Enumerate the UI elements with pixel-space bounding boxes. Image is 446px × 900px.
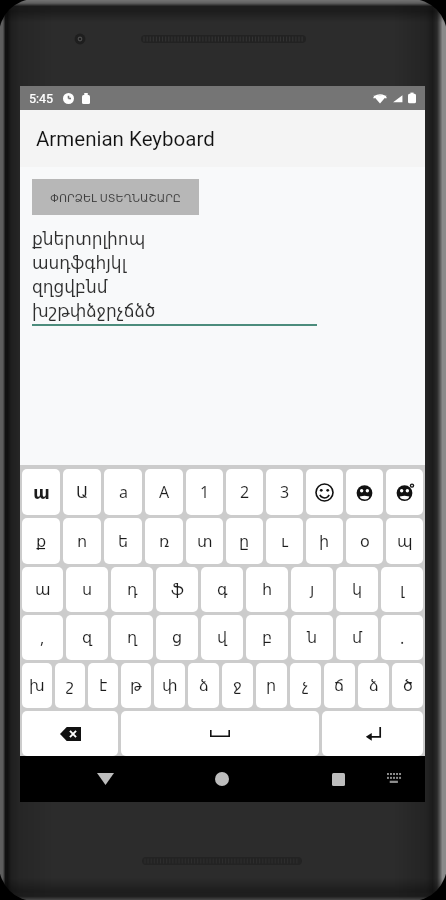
button[interactable]: Space (121, 711, 319, 756)
button[interactable]: ռ (145, 518, 183, 564)
button[interactable]: ը (226, 518, 263, 564)
staticText: քներտրլիոպ (32, 229, 146, 249)
button[interactable]: պ (386, 518, 423, 564)
button[interactable]: , (22, 615, 63, 660)
button[interactable]: ճ (324, 663, 355, 708)
button[interactable]: է (88, 663, 118, 708)
button[interactable]: յ (291, 567, 333, 612)
button[interactable]: ֆ (156, 567, 198, 612)
button[interactable]: ՓՈՐՁԵԼ ՍՏԵՂՆԱՇԱՐԸ (32, 179, 199, 215)
button[interactable]: . (381, 615, 423, 660)
staticText: ե (118, 532, 129, 551)
button[interactable]: մ (336, 615, 378, 660)
button[interactable]: փ (154, 663, 185, 708)
staticText: կ (352, 580, 363, 599)
button[interactable]: հ (246, 567, 288, 612)
staticText: ռ (159, 532, 170, 551)
staticText: գ (217, 580, 228, 599)
button[interactable]: օ (346, 518, 383, 564)
button[interactable]: a (104, 469, 142, 515)
staticText: ի (319, 532, 330, 551)
button[interactable]: տ (186, 518, 223, 564)
staticText: հ (262, 580, 273, 599)
button[interactable]: ն (291, 615, 333, 660)
staticText: ք (36, 532, 47, 551)
button[interactable]: ծ (392, 663, 423, 708)
button[interactable]: զ (66, 615, 108, 660)
staticText: մ (352, 628, 363, 647)
button[interactable]: ի (306, 518, 343, 564)
button[interactable]: ջ (222, 663, 253, 708)
button[interactable]: Enter (322, 711, 423, 756)
staticText: ա (33, 482, 50, 503)
button[interactable]: Emoji filled (346, 469, 383, 515)
staticText: է (99, 676, 108, 695)
button[interactable]: Back (83, 756, 127, 802)
staticText: պ (397, 532, 413, 551)
staticText: ս (82, 580, 93, 599)
button[interactable]: A (145, 469, 183, 515)
staticText: յ (310, 580, 315, 599)
staticText: չ (302, 676, 309, 695)
staticText: A (159, 481, 170, 503)
button[interactable]: ե (104, 518, 142, 564)
staticText: ը (239, 532, 250, 551)
staticText: 2 (240, 481, 250, 503)
button[interactable]: ղ (111, 615, 153, 660)
button[interactable]: Recent apps (316, 756, 360, 802)
staticText: 3 (280, 481, 290, 503)
button[interactable]: թ (121, 663, 151, 708)
staticText: ն (307, 628, 318, 647)
staticText: ծ (403, 676, 413, 695)
staticText: ձ (369, 676, 379, 695)
staticText: 1 (200, 481, 210, 503)
button[interactable]: լ (381, 567, 423, 612)
button[interactable]: 3 (266, 469, 303, 515)
button[interactable]: ձ (188, 663, 219, 708)
staticText: ջ (233, 676, 242, 695)
staticText: տ (197, 532, 213, 551)
staticText: խ (29, 676, 45, 695)
staticText: զղցվբնմ (32, 277, 108, 297)
button[interactable]: վ (201, 615, 243, 660)
button[interactable]: չ (290, 663, 321, 708)
button[interactable]: ս (66, 567, 108, 612)
button[interactable]: բ (246, 615, 288, 660)
button[interactable]: ւ (266, 518, 303, 564)
staticText: ր (266, 676, 277, 695)
staticText: դ (127, 580, 138, 599)
staticText: ՓՈՐՁԵԼ ՍՏԵՂՆԱՇԱՐԸ (50, 190, 181, 205)
button[interactable]: Backspace (22, 711, 118, 756)
button[interactable]: Switch keyboard (373, 756, 415, 802)
staticText: վ (217, 628, 228, 647)
button[interactable]: 2 (226, 469, 263, 515)
button[interactable]: շ (55, 663, 85, 708)
button[interactable]: ո (63, 518, 101, 564)
button[interactable]: Sticker (386, 469, 423, 515)
button[interactable]: խ (22, 663, 52, 708)
staticText: ֆ (171, 580, 184, 599)
button[interactable]: կ (336, 567, 378, 612)
button[interactable]: ր (256, 663, 287, 708)
button[interactable]: ա (22, 469, 60, 515)
staticText: . (400, 627, 405, 649)
button[interactable]: ք (22, 518, 60, 564)
staticText: 5:45 (29, 91, 54, 106)
staticText: խշթփձջրչճձծ (32, 301, 156, 321)
staticText: օ (360, 532, 370, 551)
staticText: ո (77, 532, 88, 551)
staticText: Ա (76, 483, 89, 502)
staticText: շ (66, 676, 74, 695)
button[interactable]: ց (156, 615, 198, 660)
staticText: , (40, 627, 45, 649)
button[interactable]: Home (200, 756, 244, 802)
button[interactable]: գ (201, 567, 243, 612)
button[interactable]: ա (22, 567, 63, 612)
button[interactable]: Emoji outline (306, 469, 343, 515)
staticText: զ (82, 628, 93, 647)
staticText: ասդֆգհյկլ (32, 253, 127, 273)
button[interactable]: դ (111, 567, 153, 612)
button[interactable]: 1 (186, 469, 223, 515)
button[interactable]: Ա (63, 469, 101, 515)
button[interactable]: ձ (358, 663, 389, 708)
